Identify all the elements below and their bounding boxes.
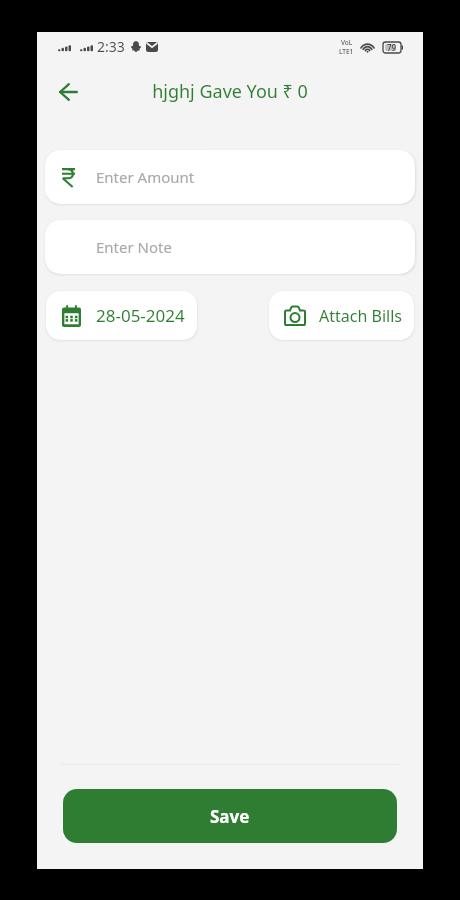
staticText: Save	[210, 805, 250, 828]
staticText: 28-05-2024	[96, 304, 185, 327]
button[interactable]: Enter Note	[45, 220, 415, 274]
staticText: Enter Note	[96, 237, 172, 257]
button[interactable]: Back	[47, 71, 89, 113]
staticText: Attach Bills	[319, 305, 402, 327]
staticText: LTE1	[339, 47, 354, 56]
button[interactable]: Enter Amount	[45, 150, 415, 204]
staticText: Enter Amount	[96, 167, 195, 187]
staticText: 79	[387, 42, 397, 53]
staticText: VoL	[341, 38, 353, 47]
staticText: 2:33	[97, 37, 125, 56]
button[interactable]: Attach Bills	[269, 291, 414, 340]
button[interactable]: 28-05-2024	[46, 291, 197, 340]
staticText: hjghj Gave You ₹ 0	[152, 79, 308, 104]
button[interactable]: Save	[63, 789, 397, 843]
